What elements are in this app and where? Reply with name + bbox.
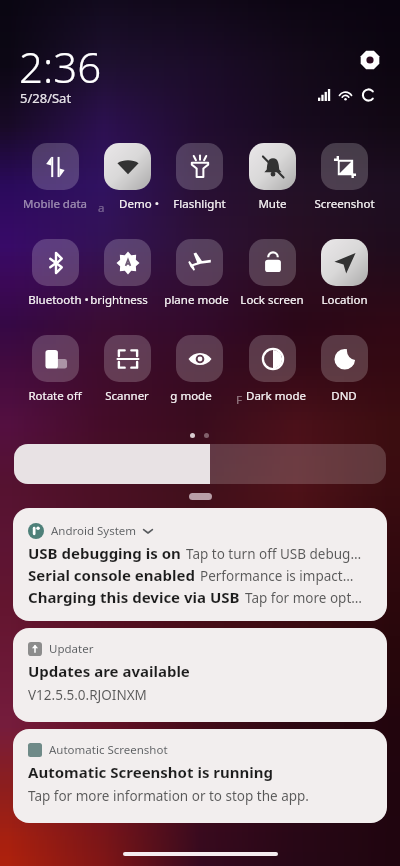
staticText: Mobile data — [23, 196, 87, 212]
staticText: Automatic Screenshot — [49, 742, 168, 758]
staticText: Tap for more information or to stop the … — [28, 787, 309, 805]
button[interactable]: Updater — [13, 628, 387, 722]
button[interactable]: Settings — [358, 48, 382, 72]
staticText: brightness — [90, 292, 148, 308]
staticText: Scanner — [105, 388, 149, 404]
button[interactable]: Brightness — [14, 444, 386, 484]
button[interactable]: Bluetooth • — [19, 239, 91, 309]
button[interactable]: Mobile data — [19, 143, 91, 213]
button[interactable]: Scanner — [91, 335, 163, 405]
button[interactable]: DND — [308, 335, 380, 405]
staticText: Tap for more opt… — [245, 589, 362, 607]
staticText: Lock screen — [240, 292, 304, 308]
button[interactable]: Screenshot — [308, 143, 380, 213]
staticText: 2:36 — [19, 38, 102, 95]
button[interactable]: Rotate off — [19, 335, 91, 405]
button[interactable]: Dark mode — [236, 335, 308, 405]
button[interactable]: Location — [308, 239, 380, 309]
staticText: Tap to turn off USB debug… — [186, 545, 362, 563]
staticText: F — [236, 392, 242, 408]
button[interactable]: g mode — [163, 335, 235, 405]
staticText: Screenshot — [314, 196, 375, 212]
button[interactable]: Demo • — [91, 143, 163, 213]
button[interactable]: brightness — [91, 239, 163, 309]
staticText: Bluetooth • — [28, 292, 89, 308]
staticText: Dark mode — [246, 388, 306, 404]
button[interactable]: Automatic Screenshot — [13, 729, 387, 823]
button[interactable]: Mute — [236, 143, 308, 213]
staticText: Mute — [258, 196, 287, 212]
staticText: Android System — [51, 523, 137, 539]
button[interactable]: Android System — [13, 508, 387, 621]
button[interactable]: Flashlight — [163, 143, 235, 213]
button[interactable]: plane mode — [163, 239, 235, 309]
staticText: Charging this device via USB — [28, 587, 240, 607]
staticText: Performance is impact… — [200, 567, 354, 585]
staticText: Automatic Screenshot is running — [28, 762, 273, 782]
staticText: 5/28/Sat — [20, 89, 72, 107]
button[interactable]: Lock screen — [236, 239, 308, 309]
staticText: g mode — [170, 388, 212, 404]
staticText: Rotate off — [28, 388, 82, 404]
staticText: Location — [321, 292, 368, 308]
staticText: Updater — [49, 641, 94, 657]
staticText: V12.5.5.0.RJOINXM — [28, 686, 147, 704]
staticText: USB debugging is on — [28, 543, 181, 563]
staticText: Updates are available — [28, 661, 190, 681]
staticText: Demo • — [119, 196, 159, 212]
staticText: a — [98, 200, 105, 216]
staticText: DND — [331, 388, 357, 404]
staticText: Serial console enabled — [28, 565, 195, 585]
staticText: Flashlight — [173, 196, 226, 212]
staticText: plane mode — [164, 292, 229, 308]
